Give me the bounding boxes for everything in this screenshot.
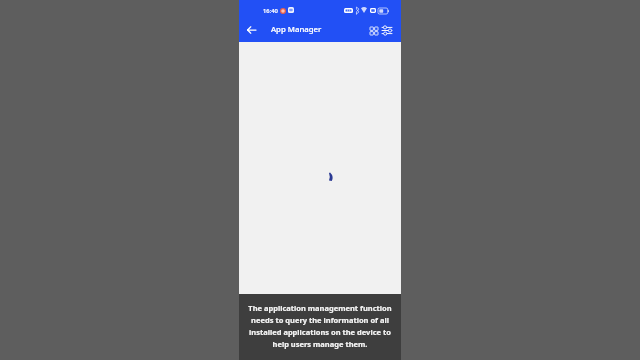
button[interactable]: Filter settings: [378, 22, 395, 39]
staticText: App Manager: [271, 24, 322, 35]
button[interactable]: Back: [243, 21, 260, 38]
staticText: The application management function need…: [246, 303, 394, 350]
staticText: 16:40: [263, 7, 278, 15]
button[interactable]: Grid view: [365, 22, 382, 39]
